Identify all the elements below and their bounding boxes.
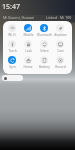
button[interactable]: Notification [2,75,23,81]
button[interactable]: Silent [36,40,52,56]
button[interactable]: Record [52,56,68,72]
button[interactable]: Battery [36,56,52,72]
staticText: Airplane [54,33,67,37]
button[interactable]: Bluetooth [36,24,52,40]
staticText: Silent [40,49,49,53]
staticText: Torch [8,49,17,53]
staticText: Lock [25,49,32,53]
staticText: Mobile [23,33,34,37]
staticText: Home [23,65,33,69]
staticText: Bluetooth [37,33,52,37]
button[interactable]: Home [20,56,36,72]
button[interactable]: Torch [4,40,20,56]
button[interactable]: Lock [20,40,36,56]
staticText: 15:47 [2,2,20,12]
staticText: Cast [57,49,64,53]
staticText: Record [55,65,66,69]
staticText: Linked · Mi 100 [46,15,72,20]
button[interactable]: Wi-Fi [4,24,20,40]
staticText: Battery [39,65,50,69]
button[interactable]: Sync [4,56,20,72]
staticText: Sync [9,65,16,69]
button[interactable]: Airplane [52,24,68,40]
button[interactable]: Cast [52,40,68,56]
button[interactable]: Mobile [20,24,36,40]
staticText: Wi-Fi [8,33,16,37]
staticText: Mi Xiaomi, Huawei [3,15,35,20]
